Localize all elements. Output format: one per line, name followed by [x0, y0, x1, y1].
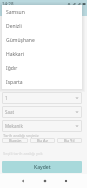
staticText: Iğdır — [6, 65, 18, 72]
button[interactable]: Bugün — [2, 138, 28, 143]
button[interactable]: Recents — [60, 175, 71, 186]
button[interactable]: Bu Ay — [30, 138, 55, 143]
button[interactable]: Denizli — [2, 19, 82, 33]
button[interactable]: Mekanik — [2, 120, 82, 132]
button[interactable]: Saat — [2, 106, 82, 118]
button[interactable]: 1 — [2, 92, 82, 104]
staticText: Kaydet — [34, 164, 51, 171]
staticText: Mekanik — [5, 123, 23, 129]
button[interactable]: Isparta — [2, 75, 82, 89]
staticText: Gümüşhane — [6, 37, 35, 44]
staticText: Bugün — [9, 138, 22, 143]
button[interactable]: Hakkari — [2, 47, 82, 61]
staticText: Denizli — [6, 23, 22, 30]
staticText: 1 — [5, 95, 8, 101]
staticText: Hakkari — [6, 51, 25, 58]
button[interactable]: Kaydet — [2, 161, 82, 173]
staticText: Bu Ay — [37, 138, 48, 143]
staticText: Samsun — [6, 9, 25, 16]
button[interactable]: Home — [39, 175, 50, 186]
staticText: Isparta — [6, 79, 23, 86]
staticText: Saat — [5, 109, 15, 115]
button[interactable]: Gümüşhane — [2, 33, 82, 47]
staticText: Bu Yıl — [64, 138, 75, 143]
staticText: Seçili tarih aralığı yok — [3, 151, 43, 156]
button[interactable]: Iğdır — [2, 61, 82, 75]
button[interactable]: Bu Yıl — [57, 138, 82, 143]
button[interactable]: Back — [17, 175, 28, 186]
button[interactable]: Samsun — [2, 5, 82, 19]
staticText: Tarih aralığı seçiniz — [3, 133, 39, 138]
staticText: 14:28 — [2, 1, 14, 7]
